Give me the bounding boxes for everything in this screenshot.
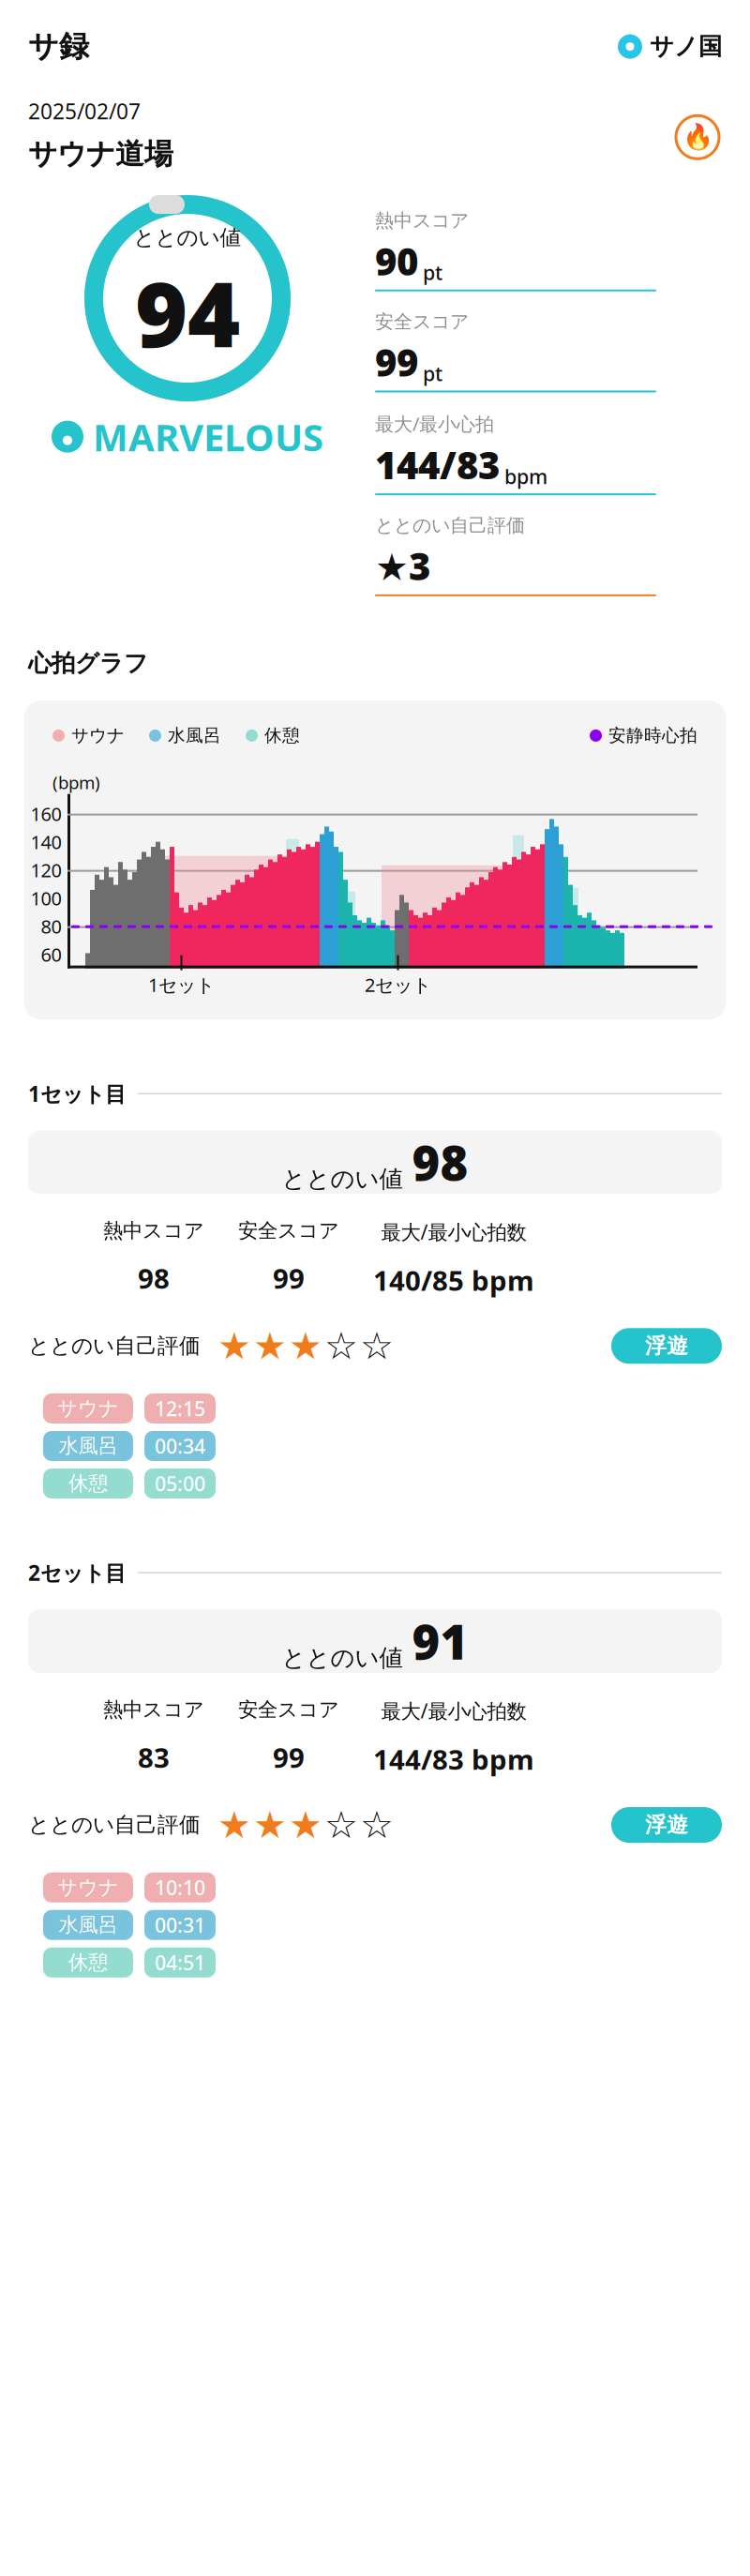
staticText: 🔥 [682,123,713,152]
staticText: 2セット [365,972,431,997]
staticText: 安全スコア [238,1697,339,1722]
staticText: 安静時心拍 [608,725,697,746]
staticText: 144/83 [375,440,500,490]
staticText: 04:51 [155,1949,205,1976]
staticText: 熱中スコア [103,1697,204,1722]
staticText: 140 [30,829,61,854]
staticText: サウナ [57,1875,119,1900]
staticText: 心拍グラフ [28,649,148,678]
staticText: ★3 [375,541,430,591]
staticText: 熱中スコア [103,1218,204,1243]
staticText: 99 [273,1739,305,1775]
button[interactable]: 浮遊 [611,1328,722,1364]
staticText: 浮遊 [645,1333,688,1359]
staticText: 99 [375,337,418,387]
staticText: ★ [289,1325,322,1367]
staticText: 60 [41,942,61,967]
staticText: 00:31 [155,1912,205,1938]
staticText: 05:00 [155,1470,205,1497]
staticText: 94 [135,253,240,372]
staticText: 2025/02/07 [28,97,141,125]
staticText: 最大/最小心拍数 [381,1218,526,1245]
staticText: 最大/最小心拍数 [381,1697,526,1724]
staticText: 2セット目 [28,1559,127,1587]
staticText: サウナ [57,1396,119,1421]
staticText: ★ [253,1325,287,1367]
staticText: ととのい自己評価 [375,514,525,537]
staticText: 水風呂 [168,725,221,746]
staticText: ☆ [360,1325,394,1367]
staticText: 160 [30,801,61,826]
staticText: 80 [41,914,61,939]
staticText: 120 [30,857,61,882]
staticText: 98 [138,1260,170,1296]
staticText: 83 [138,1739,170,1775]
staticText: ★ [253,1804,287,1846]
staticText: サ録 [28,28,89,65]
staticText: bpm [504,463,547,490]
staticText: pt [423,259,442,286]
staticText: ととのい値 [134,224,241,251]
staticText: 100 [30,886,61,911]
staticText: 91 [412,1610,468,1673]
staticText: 最大/最小心拍 [375,411,494,436]
staticText: 1セット目 [28,1080,127,1108]
staticText: 12:15 [155,1395,205,1422]
staticText: ととのい値 [282,1644,403,1673]
staticText: ★ [217,1325,251,1367]
staticText: 水風呂 [59,1434,118,1458]
staticText: ととのい自己評価 [28,1812,201,1838]
button[interactable]: サの国 [618,32,722,61]
staticText: 140/85 bpm [373,1262,534,1298]
staticText: ととのい自己評価 [28,1333,201,1359]
staticText: 00:34 [155,1433,205,1459]
staticText: ととのい値 [282,1164,403,1194]
staticText: 休憩 [264,725,300,746]
button[interactable]: 熱中度 [673,110,722,164]
staticText: 休憩 [68,1471,108,1496]
staticText: 安全スコア [238,1218,339,1243]
staticText: サウナ道場 [28,136,173,172]
staticText: ☆ [324,1804,358,1846]
staticText: MARVELOUS [93,412,323,462]
staticText: ☆ [324,1325,358,1367]
staticText: 98 [412,1131,468,1194]
staticText: 休憩 [68,1950,108,1975]
staticText: 浮遊 [645,1812,688,1838]
staticText: ☆ [360,1804,394,1846]
staticText: 安全スコア [375,310,469,333]
staticText: (bpm) [52,771,100,794]
staticText: サノ国 [650,32,722,61]
staticText: 99 [273,1260,305,1296]
staticText: 90 [375,236,418,286]
staticText: 144/83 bpm [373,1741,534,1777]
staticText: pt [423,360,442,387]
button[interactable]: 浮遊 [611,1807,722,1843]
staticText: ★ [217,1804,251,1846]
staticText: 熱中スコア [375,209,469,232]
staticText: ★ [289,1804,322,1846]
staticText: 水風呂 [59,1913,118,1937]
staticText: 1セット [148,972,215,997]
staticText: サウナ [71,725,125,746]
staticText: 10:10 [155,1874,205,1901]
